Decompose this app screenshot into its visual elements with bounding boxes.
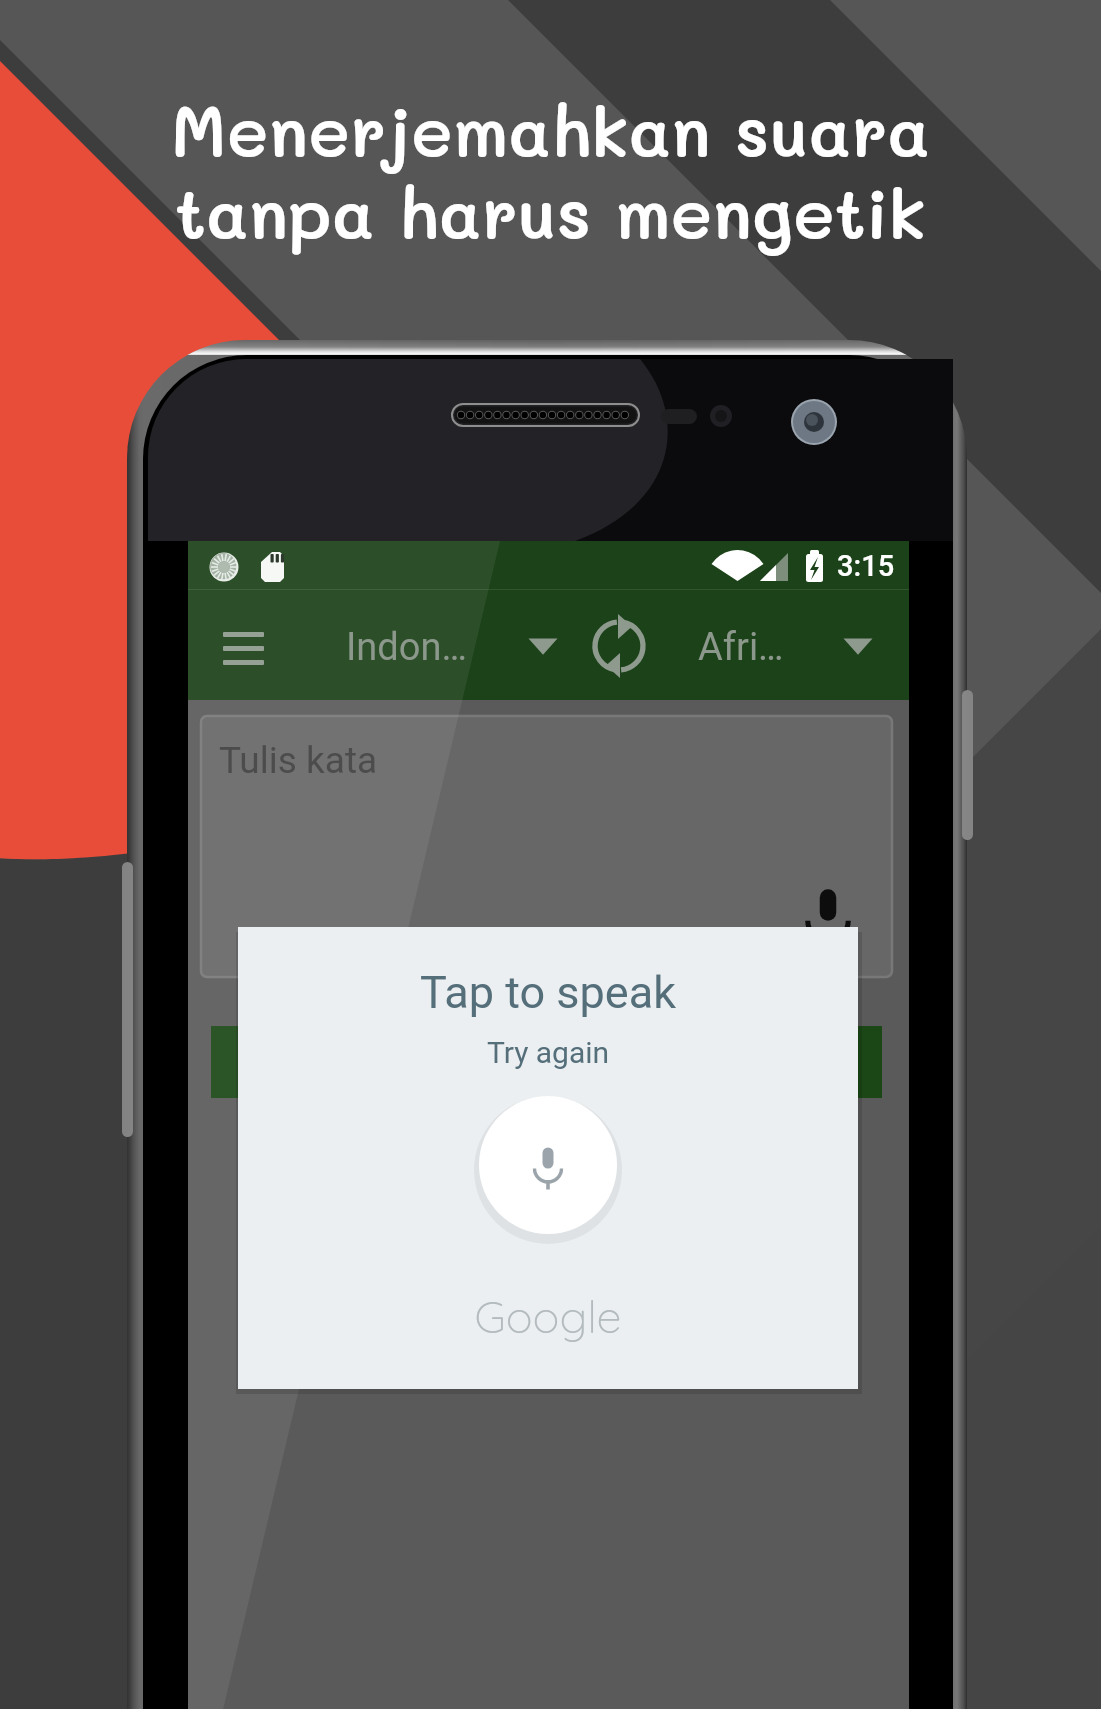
staticText: tanpa harus mengetik (0, 166, 1101, 256)
button[interactable]: Indon… (346, 625, 467, 670)
staticText: Menerjemahkan suara (0, 84, 1101, 174)
staticText: Google (238, 1288, 858, 1344)
button[interactable]: Speak (790, 860, 870, 950)
staticText: Try again (238, 1035, 858, 1070)
button[interactable]: Translate (211, 1026, 882, 1098)
button[interactable]: Swap languages (580, 600, 660, 692)
button[interactable]: Source language: Indonesian (330, 600, 570, 692)
button[interactable]: Afri… (698, 625, 784, 670)
button[interactable]: Tap to speak (481, 1099, 617, 1235)
staticText: Afri… (698, 625, 784, 670)
staticText: Tulis kata (219, 739, 378, 782)
button[interactable]: Open navigation drawer (222, 600, 310, 692)
button[interactable]: Target language: Afrikaans (680, 600, 900, 692)
staticText: 3:15 (837, 549, 895, 583)
staticText: Tap to speak (238, 966, 858, 1019)
staticText: Indon… (346, 625, 467, 670)
